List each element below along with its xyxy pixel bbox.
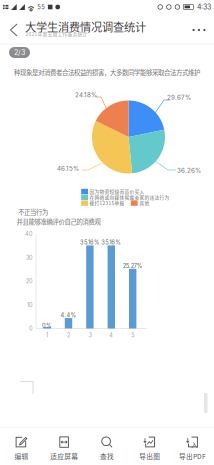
button[interactable]: 导出图 — [128, 428, 171, 465]
staticText: 0 — [29, 325, 33, 332]
button[interactable]: 编辑 — [0, 428, 43, 465]
staticText: 24.18% — [75, 91, 97, 99]
staticText: 2 — [67, 332, 70, 338]
staticText: 导出图 — [139, 451, 160, 461]
staticText: 55 — [37, 3, 45, 11]
staticText: 1 — [46, 332, 48, 338]
staticText: 3 — [88, 332, 91, 338]
staticText: 因为物资短缺而高价买入 — [89, 188, 144, 194]
staticText: 46.15% — [57, 165, 79, 172]
staticText: 入 — [191, 439, 198, 446]
staticText: 在网络或向媒体揭露卖家的违法行为 — [89, 194, 169, 200]
staticText: 大学生消费情况调查统计 — [25, 18, 146, 30]
staticText: 4 — [109, 332, 113, 338]
staticText: 40 — [25, 231, 33, 237]
staticText: 25.27% — [123, 262, 143, 269]
staticText: 35.16% — [80, 239, 100, 246]
staticText: 拨打12315举报 — [89, 200, 124, 206]
button[interactable]: Back — [0, 0, 214, 465]
staticText: 4:33 — [197, 3, 211, 11]
staticText: 35.16% — [101, 239, 121, 246]
staticText: 4.4% — [60, 312, 76, 319]
staticText: 种现象是对消费者合法权益的损害，大多数同学能够采取合法方式维护 — [14, 67, 200, 75]
staticText: 导出PDF — [179, 451, 206, 461]
button[interactable]: 适应屏幕 — [43, 428, 86, 465]
staticText: 适应屏幕 — [50, 451, 78, 461]
button[interactable]: 入 — [171, 428, 214, 465]
staticText: 2021年第五周工作服务统计 — [25, 30, 87, 37]
staticText: 30 — [26, 254, 33, 261]
button[interactable]: More options — [0, 0, 214, 465]
staticText: 不正当行为 — [18, 207, 48, 215]
staticText: 查找 — [100, 451, 114, 461]
staticText: 并且能够准确评价自己的消费观 — [16, 217, 100, 225]
staticText: 20 — [26, 278, 33, 285]
staticText: 编辑 — [14, 451, 28, 461]
staticText: 29.67% — [167, 94, 191, 101]
staticText: 5 — [131, 332, 134, 338]
staticText: 其他 — [139, 200, 149, 206]
staticText: 10 — [27, 301, 33, 308]
staticText: 2/3 — [14, 48, 25, 57]
staticText: 0% — [42, 322, 52, 329]
staticText: 36.26% — [177, 167, 201, 174]
button[interactable]: 查找 — [86, 428, 128, 465]
